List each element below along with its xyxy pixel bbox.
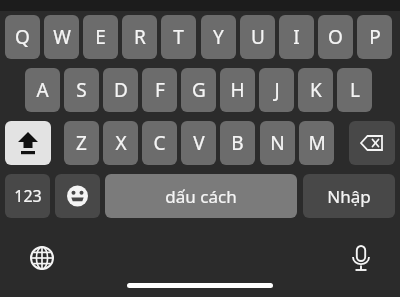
staticText: A [36, 77, 49, 103]
button[interactable]: E [83, 15, 118, 59]
button[interactable]: K [298, 68, 333, 112]
staticText: Z [76, 130, 87, 156]
staticText: dấu cách [165, 185, 237, 208]
staticText: Q [15, 24, 30, 50]
staticText: V [193, 130, 205, 156]
staticText: S [76, 77, 87, 103]
staticText: U [251, 24, 265, 50]
button[interactable]: Backspace [349, 121, 395, 165]
button[interactable]: dấu cách [105, 174, 297, 218]
button[interactable]: X [103, 121, 138, 165]
button[interactable]: Z [64, 121, 99, 165]
staticText: O [328, 24, 343, 50]
staticText: Y [213, 24, 224, 50]
staticText: M [308, 130, 326, 156]
button[interactable]: H [220, 68, 255, 112]
button[interactable]: T [161, 15, 196, 59]
button[interactable]: Y [201, 15, 236, 59]
button[interactable]: N [260, 121, 295, 165]
staticText: 123 [14, 185, 42, 207]
button[interactable]: L [337, 68, 372, 112]
button[interactable]: Shift [5, 121, 51, 165]
staticText: K [310, 77, 322, 103]
button[interactable]: B [220, 121, 255, 165]
button[interactable]: G [181, 68, 216, 112]
button[interactable]: Emoji [55, 174, 100, 218]
button[interactable]: R [122, 15, 157, 59]
button[interactable]: O [318, 15, 353, 59]
staticText: B [231, 130, 244, 156]
staticText: G [192, 77, 206, 103]
button[interactable]: F [142, 68, 177, 112]
button[interactable]: Q [5, 15, 40, 59]
button[interactable]: Change keyboard [22, 238, 62, 278]
button[interactable]: C [142, 121, 177, 165]
staticText: L [350, 77, 360, 103]
staticText: D [114, 77, 128, 103]
staticText: W [53, 24, 71, 50]
button[interactable]: V [181, 121, 216, 165]
staticText: Nhập [327, 185, 371, 208]
button[interactable]: Nhập [303, 174, 395, 218]
staticText: E [95, 24, 106, 50]
button[interactable]: U [240, 15, 275, 59]
button[interactable]: S [64, 68, 99, 112]
staticText: J [274, 77, 280, 103]
staticText: R [134, 24, 146, 50]
button[interactable]: I [279, 15, 314, 59]
button[interactable]: W [44, 15, 79, 59]
staticText: F [155, 77, 165, 103]
staticText: P [369, 24, 381, 50]
button[interactable]: Voice input [341, 238, 381, 278]
button[interactable]: J [259, 68, 294, 112]
staticText: T [173, 24, 184, 50]
staticText: C [153, 130, 166, 156]
staticText: N [270, 130, 285, 156]
button[interactable]: A [25, 68, 60, 112]
staticText: H [230, 77, 245, 103]
button[interactable]: M [299, 121, 334, 165]
staticText: I [293, 24, 300, 50]
staticText: X [115, 130, 127, 156]
button[interactable]: P [357, 15, 392, 59]
button[interactable]: D [103, 68, 138, 112]
button[interactable]: 123 [5, 174, 50, 218]
